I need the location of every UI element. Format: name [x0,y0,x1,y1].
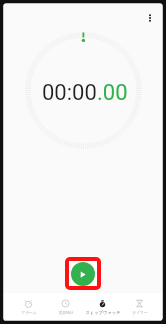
button[interactable]: Start stopwatch [71,262,95,286]
staticText: ストップウォッチ [85,310,121,315]
staticText: 世界時計 [58,310,74,315]
staticText: タイマー [132,310,148,315]
staticText: 00:00 [42,80,97,106]
button[interactable]: タイマー [121,299,158,321]
staticText: .00 [97,80,128,106]
button[interactable]: More options [138,6,162,30]
button[interactable]: ストップウォッチ [84,299,121,321]
staticText: アラーム [21,310,37,315]
button[interactable]: アラーム [10,299,47,321]
button[interactable]: 世界時計 [47,299,84,321]
